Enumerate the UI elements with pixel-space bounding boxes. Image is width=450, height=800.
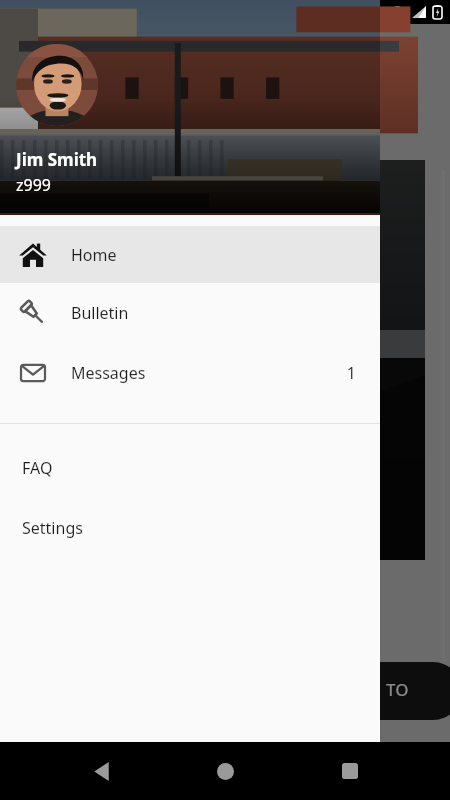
staticText: Home	[71, 244, 117, 266]
staticText: FAQ	[22, 457, 53, 479]
staticText: z999	[16, 174, 51, 196]
button[interactable]: FAQ	[0, 438, 380, 498]
staticText: Bulletin	[71, 302, 129, 324]
button[interactable]: TO	[386, 678, 409, 701]
button[interactable]: Home	[0, 226, 380, 283]
button[interactable]: Recent apps	[326, 747, 374, 795]
staticText: Messages	[71, 362, 146, 384]
staticText: Settings	[22, 517, 83, 539]
button[interactable]: Back	[77, 747, 125, 795]
staticText: Jim Smith	[16, 148, 98, 171]
staticText: 1	[346, 362, 356, 384]
button[interactable]: Settings	[0, 498, 380, 558]
button[interactable]: Messages	[0, 343, 380, 403]
button[interactable]: Bulletin	[0, 283, 380, 343]
button[interactable]: Home	[201, 747, 249, 795]
staticText: 7:08	[9, 3, 35, 21]
